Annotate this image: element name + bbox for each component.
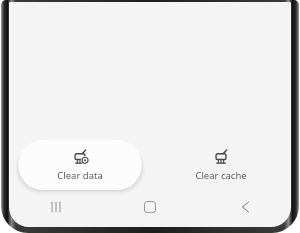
button[interactable]: Recent apps: [26, 192, 86, 222]
button[interactable]: Home: [120, 192, 180, 222]
button[interactable]: Clear data: [18, 140, 142, 190]
staticText: Clear data: [57, 169, 103, 182]
staticText: Clear cache: [195, 169, 247, 182]
button[interactable]: Back: [214, 192, 274, 222]
button[interactable]: Clear cache: [159, 140, 283, 190]
